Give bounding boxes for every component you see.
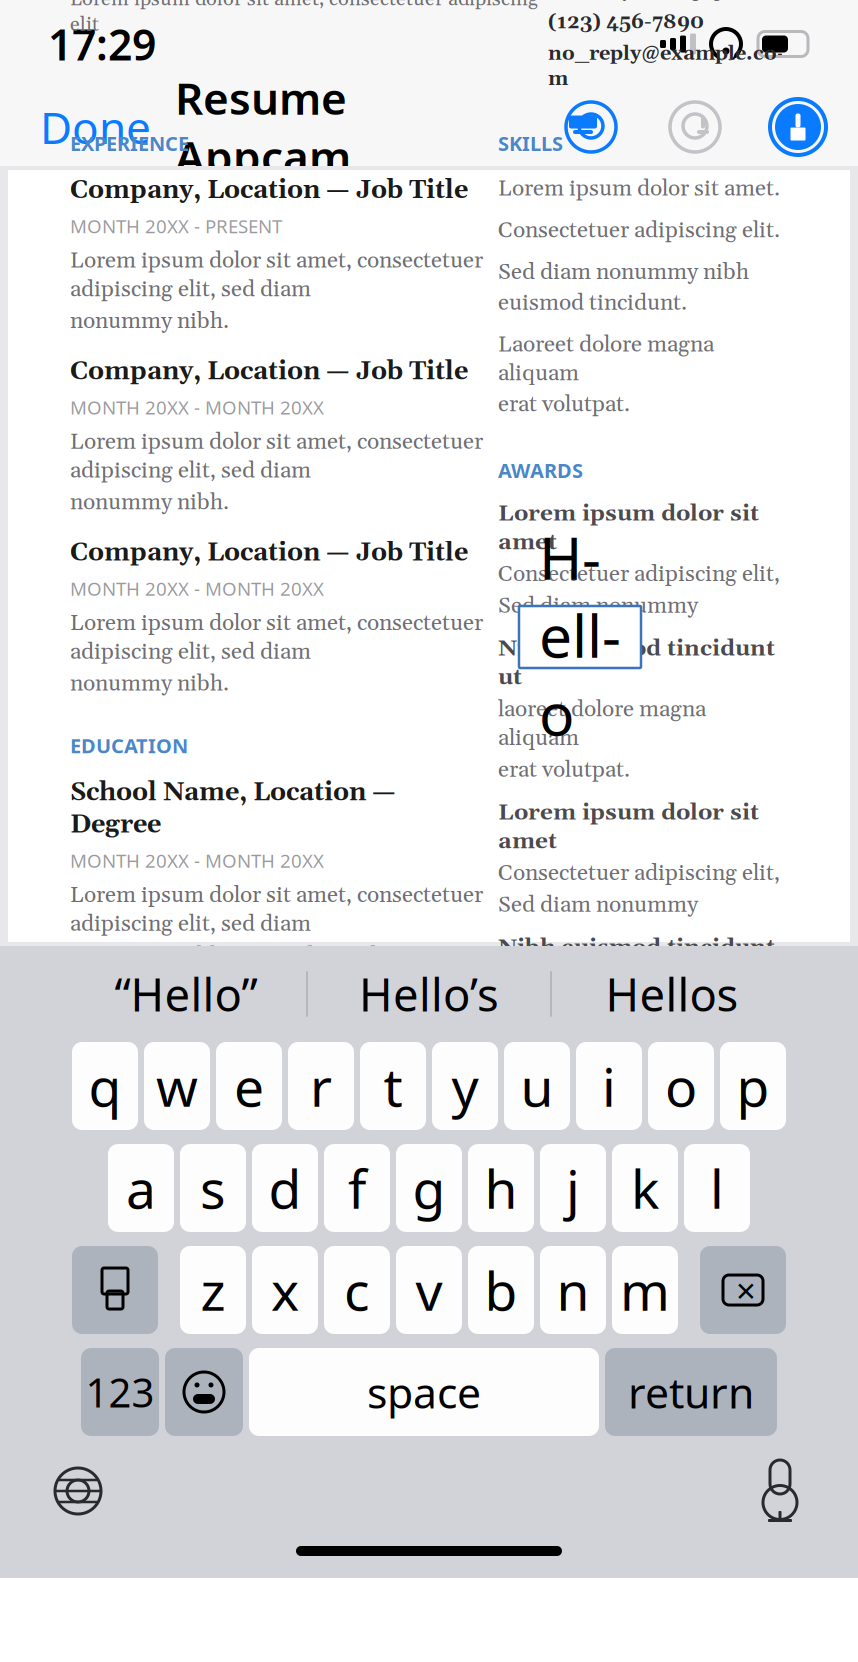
staticText: a [126,1153,156,1223]
staticText: Lorem ipsum dolor sit amet, consectetuer… [70,881,483,939]
button[interactable]: t [360,1042,426,1130]
staticText: Nibh euismod tincidunt ut [498,933,775,991]
staticText: y [451,1051,478,1121]
staticText: 17:29 [48,16,156,72]
staticText: h [484,1153,517,1223]
staticText: Lorem ipsum dolor sit amet, consectetuer… [70,0,538,38]
staticText: d [268,1153,301,1223]
staticText: euismod tincidunt. [498,289,687,318]
staticText: PROJECTS [70,1244,165,1271]
staticText: “Hello” [114,964,257,1024]
button[interactable]: l [684,1144,750,1232]
staticText: MONTH 20XX - PRESENT [70,214,282,238]
button[interactable]: Markup [768,97,828,157]
button[interactable]: q [72,1042,138,1130]
button[interactable]: Dictate [754,1458,806,1524]
button[interactable]: e [216,1042,282,1130]
button[interactable]: n [540,1246,606,1334]
staticText: Consectetuer adipiscing elit, [498,560,780,589]
button[interactable]: c [324,1246,390,1334]
staticText: space [367,1364,481,1420]
staticText: Lorem ipsum dolor sit amet, consectetuer… [70,1123,483,1181]
staticText: Sed diam nonummy nibh [498,258,749,287]
staticText: Lorem ipsum, Dolor sit amet, [498,1160,729,1218]
button[interactable]: Emoji [165,1348,243,1436]
staticText: Lorem ipsum dolor sit amet, consectetuer… [70,609,483,667]
staticText: Lorem ipsum dolor sit amet [498,499,759,557]
staticText: erat volutpat. [498,390,630,419]
button[interactable]: w [144,1042,210,1130]
staticText: Sed diam nonummy [498,592,698,621]
staticText: Lorem ipsum dolor sit amet [498,798,759,856]
staticText: Laoreet dolore magna aliquam [498,331,714,388]
staticText: g [412,1153,445,1223]
staticText: i [602,1051,616,1121]
button[interactable]: d [252,1144,318,1232]
button[interactable]: m [612,1246,678,1334]
staticText: j [566,1153,580,1223]
staticText: t [383,1051,402,1121]
button[interactable]: space [249,1348,599,1436]
button[interactable]: f [324,1144,390,1232]
button[interactable]: b [468,1246,534,1334]
button[interactable]: Done [30,98,161,156]
staticText: p [736,1051,769,1121]
button[interactable]: o [648,1042,714,1130]
staticText: nonummy nibh euismod tincidunt ut laoree… [70,941,437,999]
staticText: Company, Location — Job Title [70,537,468,569]
button[interactable]: p [720,1042,786,1130]
staticText: o [665,1051,697,1121]
staticText: MONTH 20XX - MONTH 20XX [70,395,324,420]
button[interactable]: k [612,1144,678,1232]
button[interactable]: j [540,1144,606,1232]
button[interactable]: a [108,1144,174,1232]
button[interactable]: g [396,1144,462,1232]
staticText: laoreet dolore magna aliquam [498,994,706,1052]
staticText: Company, Location — Job Title [70,356,468,388]
button[interactable]: Hello’s [308,954,550,1034]
staticText: u [520,1051,553,1121]
button[interactable]: Redo [668,100,722,154]
button[interactable]: Next keyboard [52,1465,104,1517]
button[interactable]: z [180,1246,246,1334]
button[interactable]: Undo [564,100,618,154]
staticText: f [348,1153,366,1223]
button[interactable]: Shift [72,1246,158,1334]
staticText: m [620,1255,670,1325]
button[interactable]: h [468,1144,534,1232]
button[interactable]: u [504,1042,570,1130]
staticText: erat volutpat. [498,756,630,784]
button[interactable]: s [180,1144,246,1232]
button[interactable]: i [576,1042,642,1130]
button[interactable]: r [288,1042,354,1130]
staticText: c [344,1255,370,1325]
button[interactable]: Delete [700,1246,786,1334]
button[interactable]: return [605,1348,777,1436]
staticText: Consectetuer [498,1220,629,1249]
staticText: k [631,1153,659,1223]
button[interactable]: Hellos [552,954,792,1034]
staticText: Nibh euismod tincidunt ut [498,634,775,692]
staticText: MONTH 20XX - MONTH 20XX [70,576,324,601]
staticText: no_reply@example.com [548,41,783,92]
staticText: × [736,1267,756,1313]
staticText: w [156,1051,198,1121]
staticText: laoreet dolore magna aliquam [498,695,706,753]
button[interactable]: 123 [81,1348,159,1436]
staticText: Sed diam nonummy [498,891,698,920]
staticText: b [484,1255,517,1325]
staticText: q [88,1051,121,1121]
staticText: Lorem ipsum dolor sit amet. [498,174,780,203]
staticText: LANGUAGES [498,1117,617,1144]
staticText: erat volutpat. [498,1055,630,1083]
staticText: v [415,1255,442,1325]
staticText: EXPERIENCE [70,130,189,156]
button[interactable]: y [432,1042,498,1130]
staticText: nonummy nibh. [70,307,229,336]
staticText: Consectetuer adipiscing elit. [498,216,780,245]
staticText: Lorem ipsum dolor sit amet, consectetuer… [70,246,483,304]
button[interactable]: x [252,1246,318,1334]
button[interactable]: “Hello” [66,954,306,1034]
button[interactable]: v [396,1246,462,1334]
staticText: s [200,1153,226,1223]
